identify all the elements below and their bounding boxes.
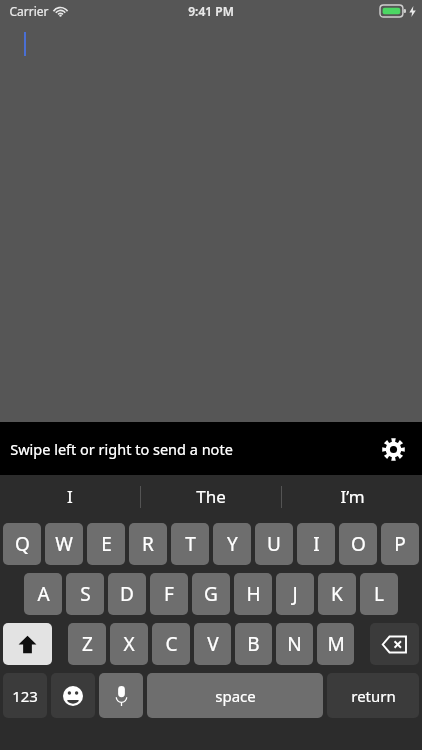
button[interactable]: I bbox=[0, 475, 140, 518]
button[interactable]: X bbox=[110, 623, 148, 665]
staticText: B bbox=[247, 631, 260, 657]
staticText: S bbox=[80, 581, 91, 607]
staticText: U bbox=[267, 531, 281, 557]
button[interactable]: I’m bbox=[282, 475, 422, 518]
staticText: L bbox=[374, 581, 384, 607]
staticText: V bbox=[207, 631, 219, 657]
staticText: E bbox=[101, 531, 112, 557]
button[interactable]: A bbox=[24, 573, 62, 615]
button[interactable]: P bbox=[381, 523, 419, 565]
staticText: M bbox=[327, 631, 345, 657]
staticText: The bbox=[196, 485, 226, 508]
staticText: P bbox=[394, 531, 406, 557]
button[interactable]: H bbox=[234, 573, 272, 615]
button[interactable]: Settings bbox=[376, 432, 410, 466]
staticText: return bbox=[351, 686, 396, 706]
button[interactable]: Q bbox=[3, 523, 41, 565]
button[interactable]: Y bbox=[213, 523, 251, 565]
staticText: I bbox=[313, 531, 320, 557]
button[interactable]: W bbox=[45, 523, 83, 565]
staticText: X bbox=[123, 631, 135, 657]
button[interactable]: U bbox=[255, 523, 293, 565]
staticText: N bbox=[287, 631, 302, 657]
button[interactable]: Shift bbox=[3, 623, 52, 665]
button[interactable]: O bbox=[339, 523, 377, 565]
button[interactable]: L bbox=[360, 573, 398, 615]
button[interactable]: Emoji bbox=[51, 673, 95, 718]
button[interactable]: V bbox=[194, 623, 231, 665]
staticText: D bbox=[120, 581, 134, 607]
staticText: C bbox=[165, 631, 178, 657]
staticText: A bbox=[37, 581, 50, 607]
staticText: I’m bbox=[340, 485, 365, 508]
button[interactable]: The bbox=[141, 475, 281, 518]
staticText: W bbox=[55, 531, 73, 557]
button[interactable]: K bbox=[318, 573, 356, 615]
button[interactable]: T bbox=[171, 523, 209, 565]
staticText: Swipe left or right to send a note bbox=[10, 439, 233, 459]
button[interactable]: I bbox=[297, 523, 335, 565]
button[interactable]: M bbox=[317, 623, 354, 665]
button[interactable]: S bbox=[66, 573, 104, 615]
button[interactable]: D bbox=[108, 573, 146, 615]
staticText: R bbox=[142, 531, 154, 557]
staticText: space bbox=[215, 686, 256, 706]
staticText: 123 bbox=[12, 686, 38, 706]
staticText: 9:41 PM bbox=[188, 3, 234, 19]
staticText: Carrier bbox=[9, 3, 49, 19]
staticText: H bbox=[246, 581, 261, 607]
staticText: T bbox=[185, 531, 196, 557]
staticText: J bbox=[292, 581, 298, 607]
button[interactable]: Backspace bbox=[370, 623, 419, 665]
button[interactable]: G bbox=[192, 573, 230, 615]
staticText: Z bbox=[82, 631, 93, 657]
staticText: K bbox=[331, 581, 343, 607]
button[interactable]: return bbox=[327, 673, 419, 718]
button[interactable]: J bbox=[276, 573, 314, 615]
button[interactable]: 123 bbox=[3, 673, 47, 718]
button[interactable]: B bbox=[235, 623, 272, 665]
button[interactable]: F bbox=[150, 573, 188, 615]
staticText: G bbox=[204, 581, 218, 607]
staticText: F bbox=[164, 581, 174, 607]
staticText: I bbox=[67, 485, 73, 508]
button[interactable]: E bbox=[87, 523, 125, 565]
staticText: Y bbox=[227, 531, 238, 557]
button[interactable]: space bbox=[147, 673, 323, 718]
staticText: O bbox=[351, 531, 366, 557]
button[interactable]: R bbox=[129, 523, 167, 565]
button[interactable]: Z bbox=[68, 623, 106, 665]
button[interactable]: C bbox=[152, 623, 190, 665]
staticText: Q bbox=[15, 531, 30, 557]
button[interactable]: Dictation bbox=[99, 673, 143, 718]
button[interactable]: N bbox=[276, 623, 313, 665]
